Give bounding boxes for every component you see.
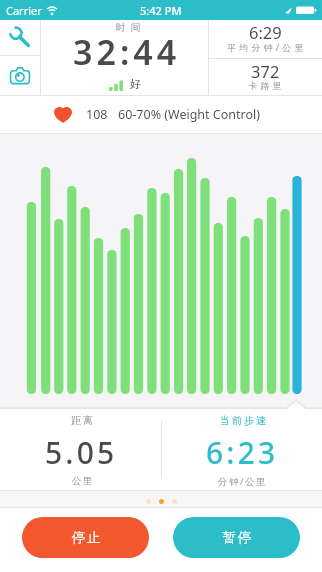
button[interactable]: 距离	[0, 409, 161, 491]
staticText: 卡路里	[248, 80, 285, 91]
button[interactable]	[0, 20, 40, 55]
staticText: 停止	[71, 529, 101, 546]
staticText: 暂停	[222, 529, 252, 546]
button[interactable]: 暂停	[173, 517, 300, 558]
staticText: 好	[130, 77, 141, 91]
staticText: 当前步速	[219, 414, 267, 427]
staticText: 平均分钟/公里	[227, 41, 307, 53]
staticText: 108	[86, 106, 108, 123]
staticText: 5.05	[45, 432, 118, 473]
staticText: 5:42 PM	[140, 3, 182, 18]
staticText: 距离	[70, 414, 94, 427]
button[interactable]: 当前步速	[161, 409, 322, 491]
staticText: 32:44	[73, 29, 181, 75]
staticText: 分钟/公里	[218, 475, 268, 488]
staticText: 时间	[113, 21, 143, 34]
staticText: 公里	[71, 475, 93, 487]
staticText: 6:29	[249, 21, 282, 43]
staticText: Carrier	[6, 3, 42, 18]
staticText: 6:23	[206, 432, 279, 473]
button[interactable]: 停止	[22, 517, 149, 558]
button[interactable]	[0, 56, 40, 96]
staticText: 60-70% (Weight Control)	[118, 106, 260, 123]
staticText: 372	[251, 60, 280, 82]
